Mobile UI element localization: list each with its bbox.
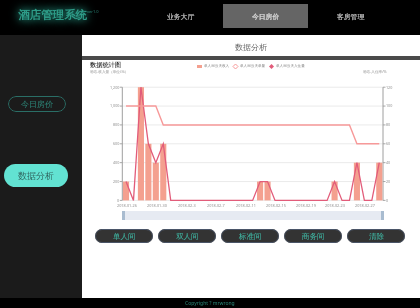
staticText: 60 xyxy=(386,141,391,146)
staticText: 今日房价 xyxy=(21,99,53,109)
staticText: 2018-02-7 xyxy=(207,203,225,208)
staticText: 2018-02-11 xyxy=(236,203,256,208)
staticText: 单人间 xyxy=(113,232,136,241)
staticText: 2018-02-19 xyxy=(296,203,316,208)
staticText: 100 xyxy=(386,103,393,108)
button[interactable]: 双人间 xyxy=(158,229,216,243)
staticText: 1,000 xyxy=(110,103,120,108)
staticText: 酒店-收入量（单位/元） xyxy=(90,69,129,74)
staticText: 2018-01-26 xyxy=(117,203,137,208)
staticText: ver1.0 xyxy=(87,9,99,14)
button[interactable]: 今日房价 xyxy=(8,96,66,112)
staticText: 标准间 xyxy=(239,232,262,241)
staticText: 0 xyxy=(117,198,120,203)
button[interactable]: 清除 xyxy=(347,229,405,243)
staticText: 数据分析 xyxy=(18,170,54,181)
staticText: 单人间当天入住量 xyxy=(276,64,305,69)
staticText: 2018-02-3 xyxy=(178,203,196,208)
staticText: 2018-02-23 xyxy=(325,203,345,208)
staticText: 单人间当天收入 xyxy=(204,64,230,69)
staticText: 业务大厅 xyxy=(167,12,195,21)
staticText: 400 xyxy=(113,160,120,165)
staticText: 数据统计图 xyxy=(90,61,121,69)
staticText: 0 xyxy=(386,198,389,203)
staticText: 2018-01-30 xyxy=(147,203,167,208)
button[interactable]: 今日房价 xyxy=(223,4,308,28)
button[interactable]: 商务间 xyxy=(284,229,342,243)
staticText: 120 xyxy=(386,85,393,90)
staticText: 2018-02-15 xyxy=(266,203,286,208)
staticText: 200 xyxy=(113,179,120,184)
staticText: 600 xyxy=(113,141,120,146)
button[interactable]: 标准间 xyxy=(221,229,279,243)
staticText: 双人间 xyxy=(176,232,199,241)
staticText: 1,200 xyxy=(110,85,120,90)
button[interactable]: 业务大厅 xyxy=(138,4,223,28)
staticText: 商务间 xyxy=(302,232,325,241)
staticText: 数据分析 xyxy=(235,42,267,52)
staticText: 酒店管理系统 xyxy=(18,8,87,22)
staticText: 清除 xyxy=(369,232,384,241)
staticText: 40 xyxy=(386,160,391,165)
staticText: Copyright ? mrwrong xyxy=(185,300,235,307)
button[interactable]: 客房管理 xyxy=(308,4,393,28)
staticText: 单人间当天单量 xyxy=(240,64,266,69)
staticText: 80 xyxy=(386,122,391,127)
staticText: 今日房价 xyxy=(252,12,280,21)
button[interactable]: 单人间 xyxy=(95,229,153,243)
button[interactable]: 数据分析 xyxy=(4,164,68,187)
staticText: 800 xyxy=(113,122,120,127)
staticText: 酒店-入住率/% xyxy=(363,69,387,74)
staticText: 2018-02-27 xyxy=(355,203,375,208)
staticText: 20 xyxy=(386,179,391,184)
staticText: 客房管理 xyxy=(337,12,365,21)
